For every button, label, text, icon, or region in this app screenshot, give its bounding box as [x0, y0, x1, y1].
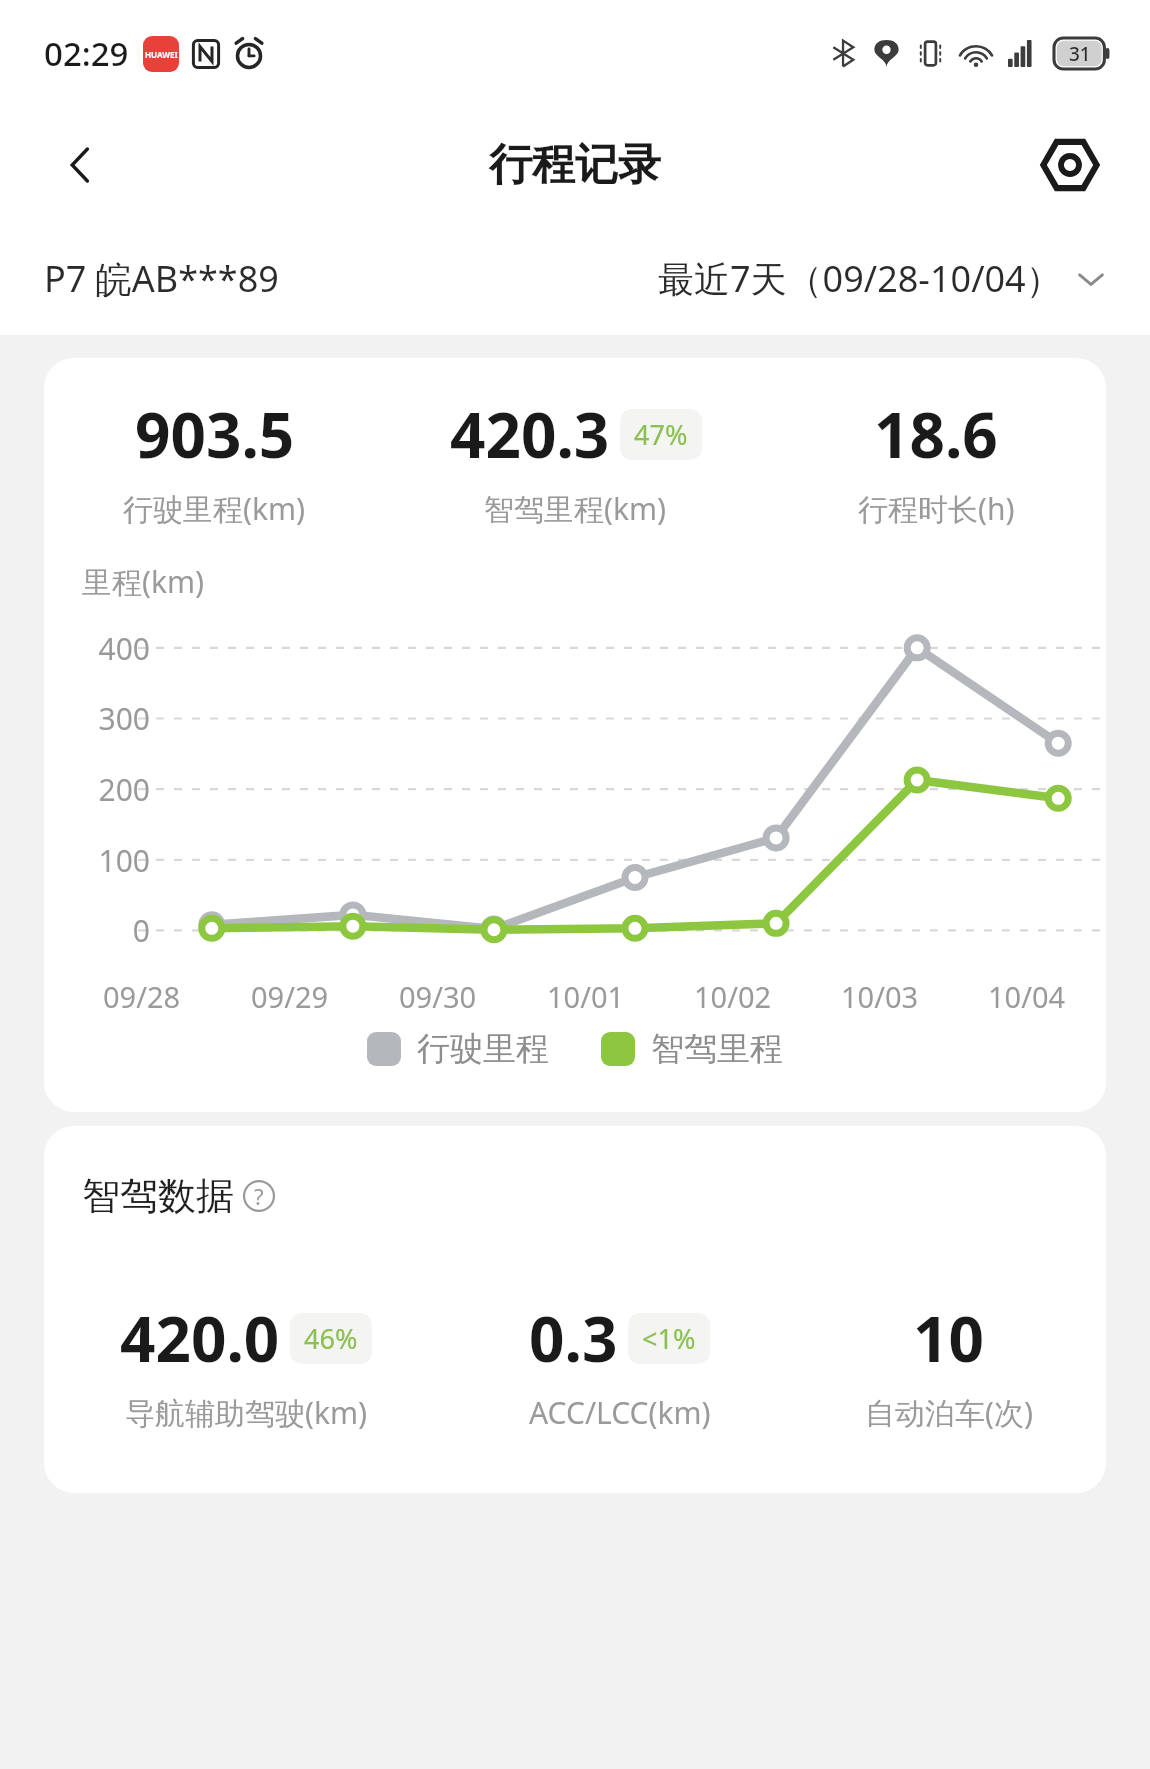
staticText: 10/03	[841, 977, 919, 1016]
button[interactable]: Settings	[1030, 125, 1110, 205]
staticText: 18.6	[874, 392, 998, 476]
staticText: 400	[70, 628, 150, 669]
staticText: 420.3	[450, 392, 610, 476]
staticText: 200	[70, 769, 150, 810]
staticText: ACC/LCC(km)	[529, 1392, 711, 1433]
staticText: 0	[70, 910, 150, 951]
staticText: 300	[70, 698, 150, 739]
staticText: 09/30	[399, 977, 477, 1016]
staticText: 10/01	[547, 977, 625, 1016]
staticText: 420.0	[120, 1296, 280, 1380]
staticText: <1%	[642, 1320, 696, 1357]
staticText: 46%	[304, 1320, 358, 1357]
staticText: 行驶里程(km)	[123, 488, 306, 529]
staticText: 47%	[634, 416, 688, 453]
staticText: ?	[254, 1181, 264, 1211]
staticText: 09/29	[251, 977, 329, 1016]
staticText: 09/28	[103, 977, 181, 1016]
staticText: 02:29	[44, 31, 129, 76]
staticText: 智驾里程	[651, 1028, 783, 1070]
staticText: 10/02	[694, 977, 772, 1016]
staticText: 0.3	[529, 1296, 618, 1380]
staticText: 行程时长(h)	[858, 488, 1015, 529]
staticText: 自动泊车(次)	[865, 1392, 1033, 1433]
staticText: 903.5	[135, 392, 295, 476]
staticText: 智驾数据	[82, 1172, 234, 1220]
staticText: 里程(km)	[82, 561, 205, 602]
staticText: 行驶里程	[417, 1028, 549, 1070]
staticText: 10/04	[988, 977, 1066, 1016]
staticText: 10	[913, 1296, 984, 1380]
button[interactable]: Info	[242, 1179, 276, 1213]
staticText: 最近7天（09/28-10/04）	[658, 254, 1062, 303]
staticText: HUAWEI	[145, 49, 178, 60]
button[interactable]: 最近7天（09/28-10/04）	[658, 254, 1106, 303]
staticText: 100	[70, 840, 150, 881]
button[interactable]: Back	[42, 126, 120, 204]
staticText: 智驾里程(km)	[484, 488, 667, 529]
staticText: 31	[1069, 41, 1091, 67]
staticText: 行程记录	[489, 138, 661, 192]
button[interactable]: P7 皖AB***89	[44, 254, 279, 303]
staticText: 导航辅助驾驶(km)	[125, 1392, 368, 1433]
staticText: P7 皖AB***89	[44, 254, 279, 303]
